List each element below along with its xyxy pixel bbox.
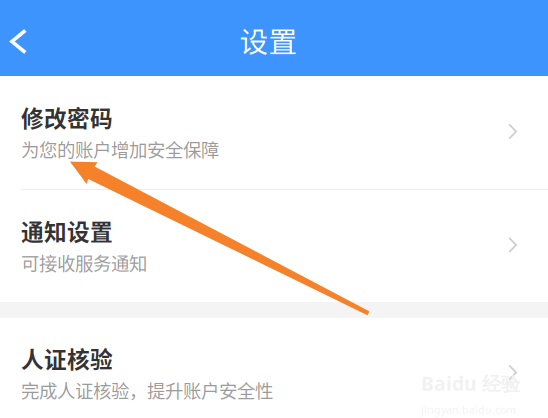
button[interactable]: Back bbox=[0, 0, 58, 76]
staticText: 设置 bbox=[239, 19, 297, 61]
button[interactable]: 人证核验 bbox=[0, 318, 548, 418]
staticText: 为您的账户增加安全保障 bbox=[21, 136, 219, 162]
staticText: Baidu 经验 bbox=[421, 370, 520, 396]
staticText: 可接收服务通知 bbox=[21, 249, 147, 276]
staticText: jingyan.baidu.com bbox=[421, 402, 516, 417]
staticText: 人证核验 bbox=[21, 342, 113, 375]
button[interactable]: 通知设置 bbox=[0, 190, 548, 302]
staticText: 完成人证核验，提升账户安全性 bbox=[21, 377, 273, 403]
staticText: 修改密码 bbox=[21, 101, 113, 134]
button[interactable]: 修改密码 bbox=[0, 76, 548, 189]
staticText: 通知设置 bbox=[21, 214, 113, 247]
